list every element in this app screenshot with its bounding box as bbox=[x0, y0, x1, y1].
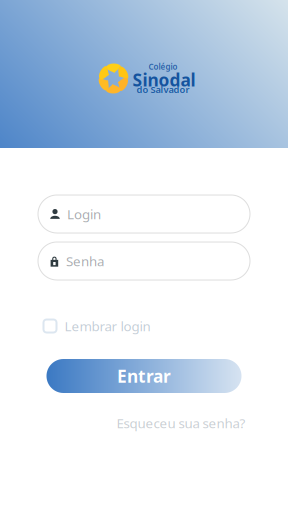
staticText: Lembrar login bbox=[64, 317, 150, 335]
staticText: Esqueceu sua senha? bbox=[116, 414, 245, 432]
staticText: Senha bbox=[66, 252, 104, 270]
staticText: Colégio bbox=[148, 61, 177, 72]
button[interactable]: Lembrar login bbox=[43, 317, 244, 335]
staticText: Entrar bbox=[117, 364, 171, 387]
button[interactable]: Esqueceu sua senha? bbox=[42, 416, 245, 430]
staticText: Login bbox=[67, 205, 101, 223]
button[interactable]: Senha bbox=[38, 242, 250, 280]
staticText: do Salvador bbox=[136, 83, 189, 96]
button[interactable]: Login bbox=[38, 195, 250, 233]
staticText: Sinodal bbox=[132, 68, 195, 91]
button[interactable]: Entrar bbox=[46, 359, 241, 393]
